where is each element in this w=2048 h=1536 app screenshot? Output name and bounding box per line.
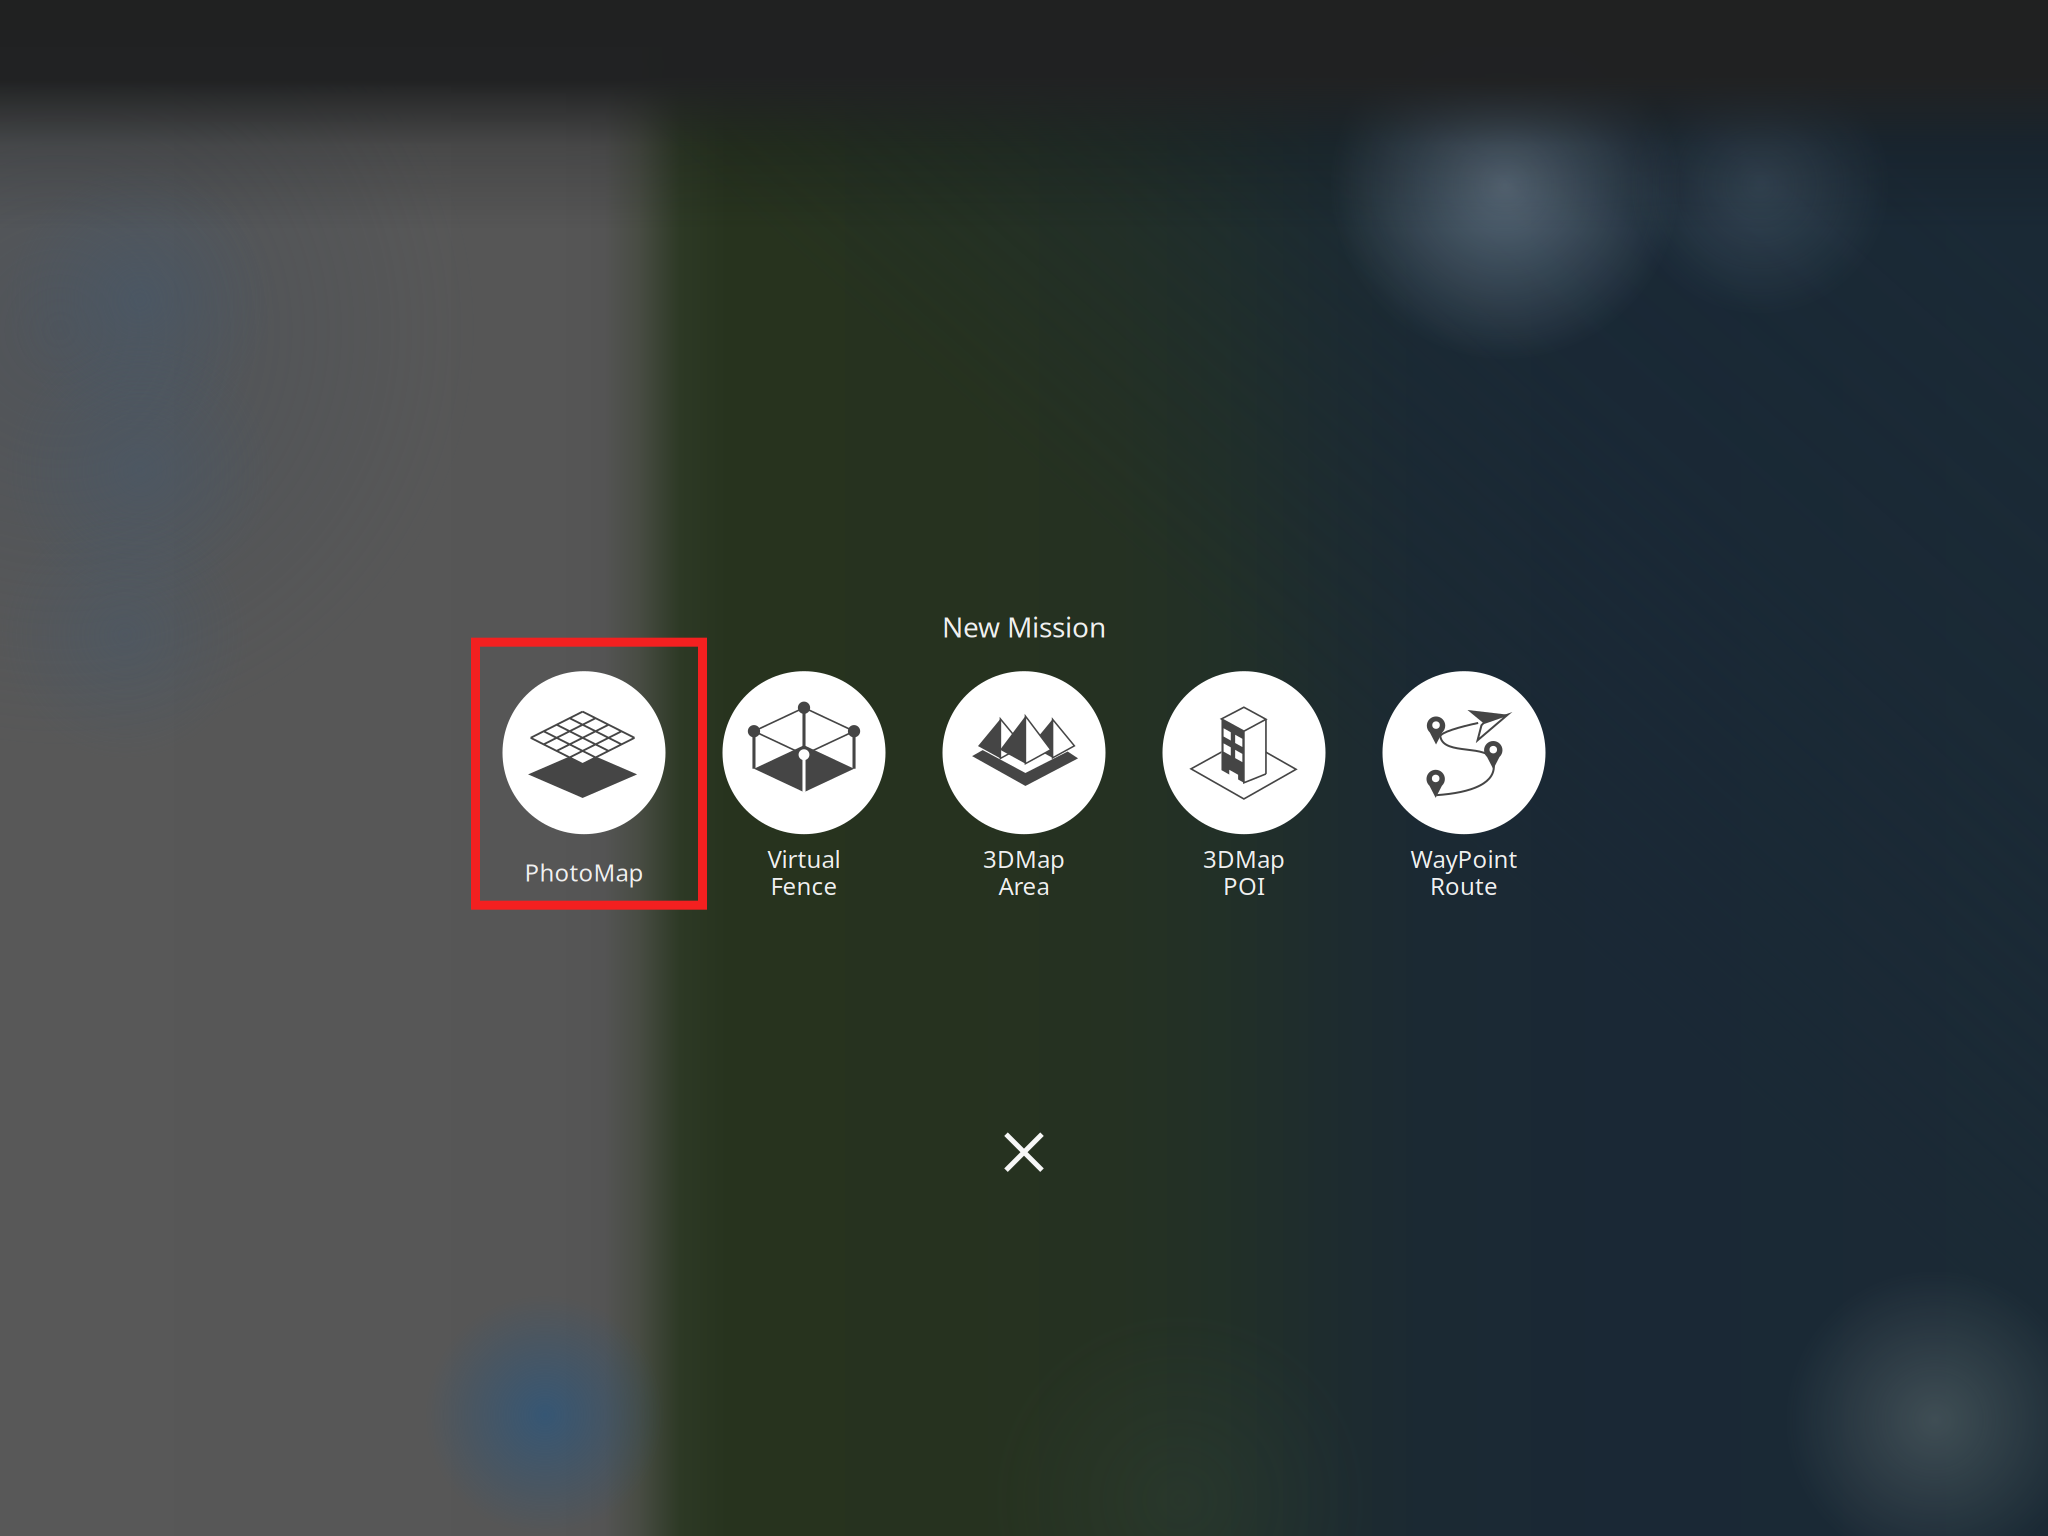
- button[interactable]: PhotoMap: [474, 671, 694, 910]
- staticText: POI: [1223, 870, 1265, 902]
- staticText: Fence: [770, 870, 837, 902]
- staticText: 3DMap: [983, 843, 1065, 875]
- staticText: New Mission: [942, 608, 1106, 645]
- staticText: 3DMap: [1203, 843, 1285, 875]
- button[interactable]: Virtual: [694, 671, 914, 910]
- button[interactable]: Close: [994, 1122, 1054, 1182]
- staticText: Route: [1430, 870, 1498, 902]
- staticText: Virtual: [767, 843, 840, 875]
- staticText: PhotoMap: [524, 856, 643, 888]
- button[interactable]: 3DMap: [1134, 671, 1354, 910]
- staticText: WayPoint: [1410, 843, 1517, 875]
- staticText: Area: [998, 870, 1049, 902]
- button[interactable]: WayPoint: [1354, 671, 1574, 910]
- button[interactable]: 3DMap: [914, 671, 1134, 910]
